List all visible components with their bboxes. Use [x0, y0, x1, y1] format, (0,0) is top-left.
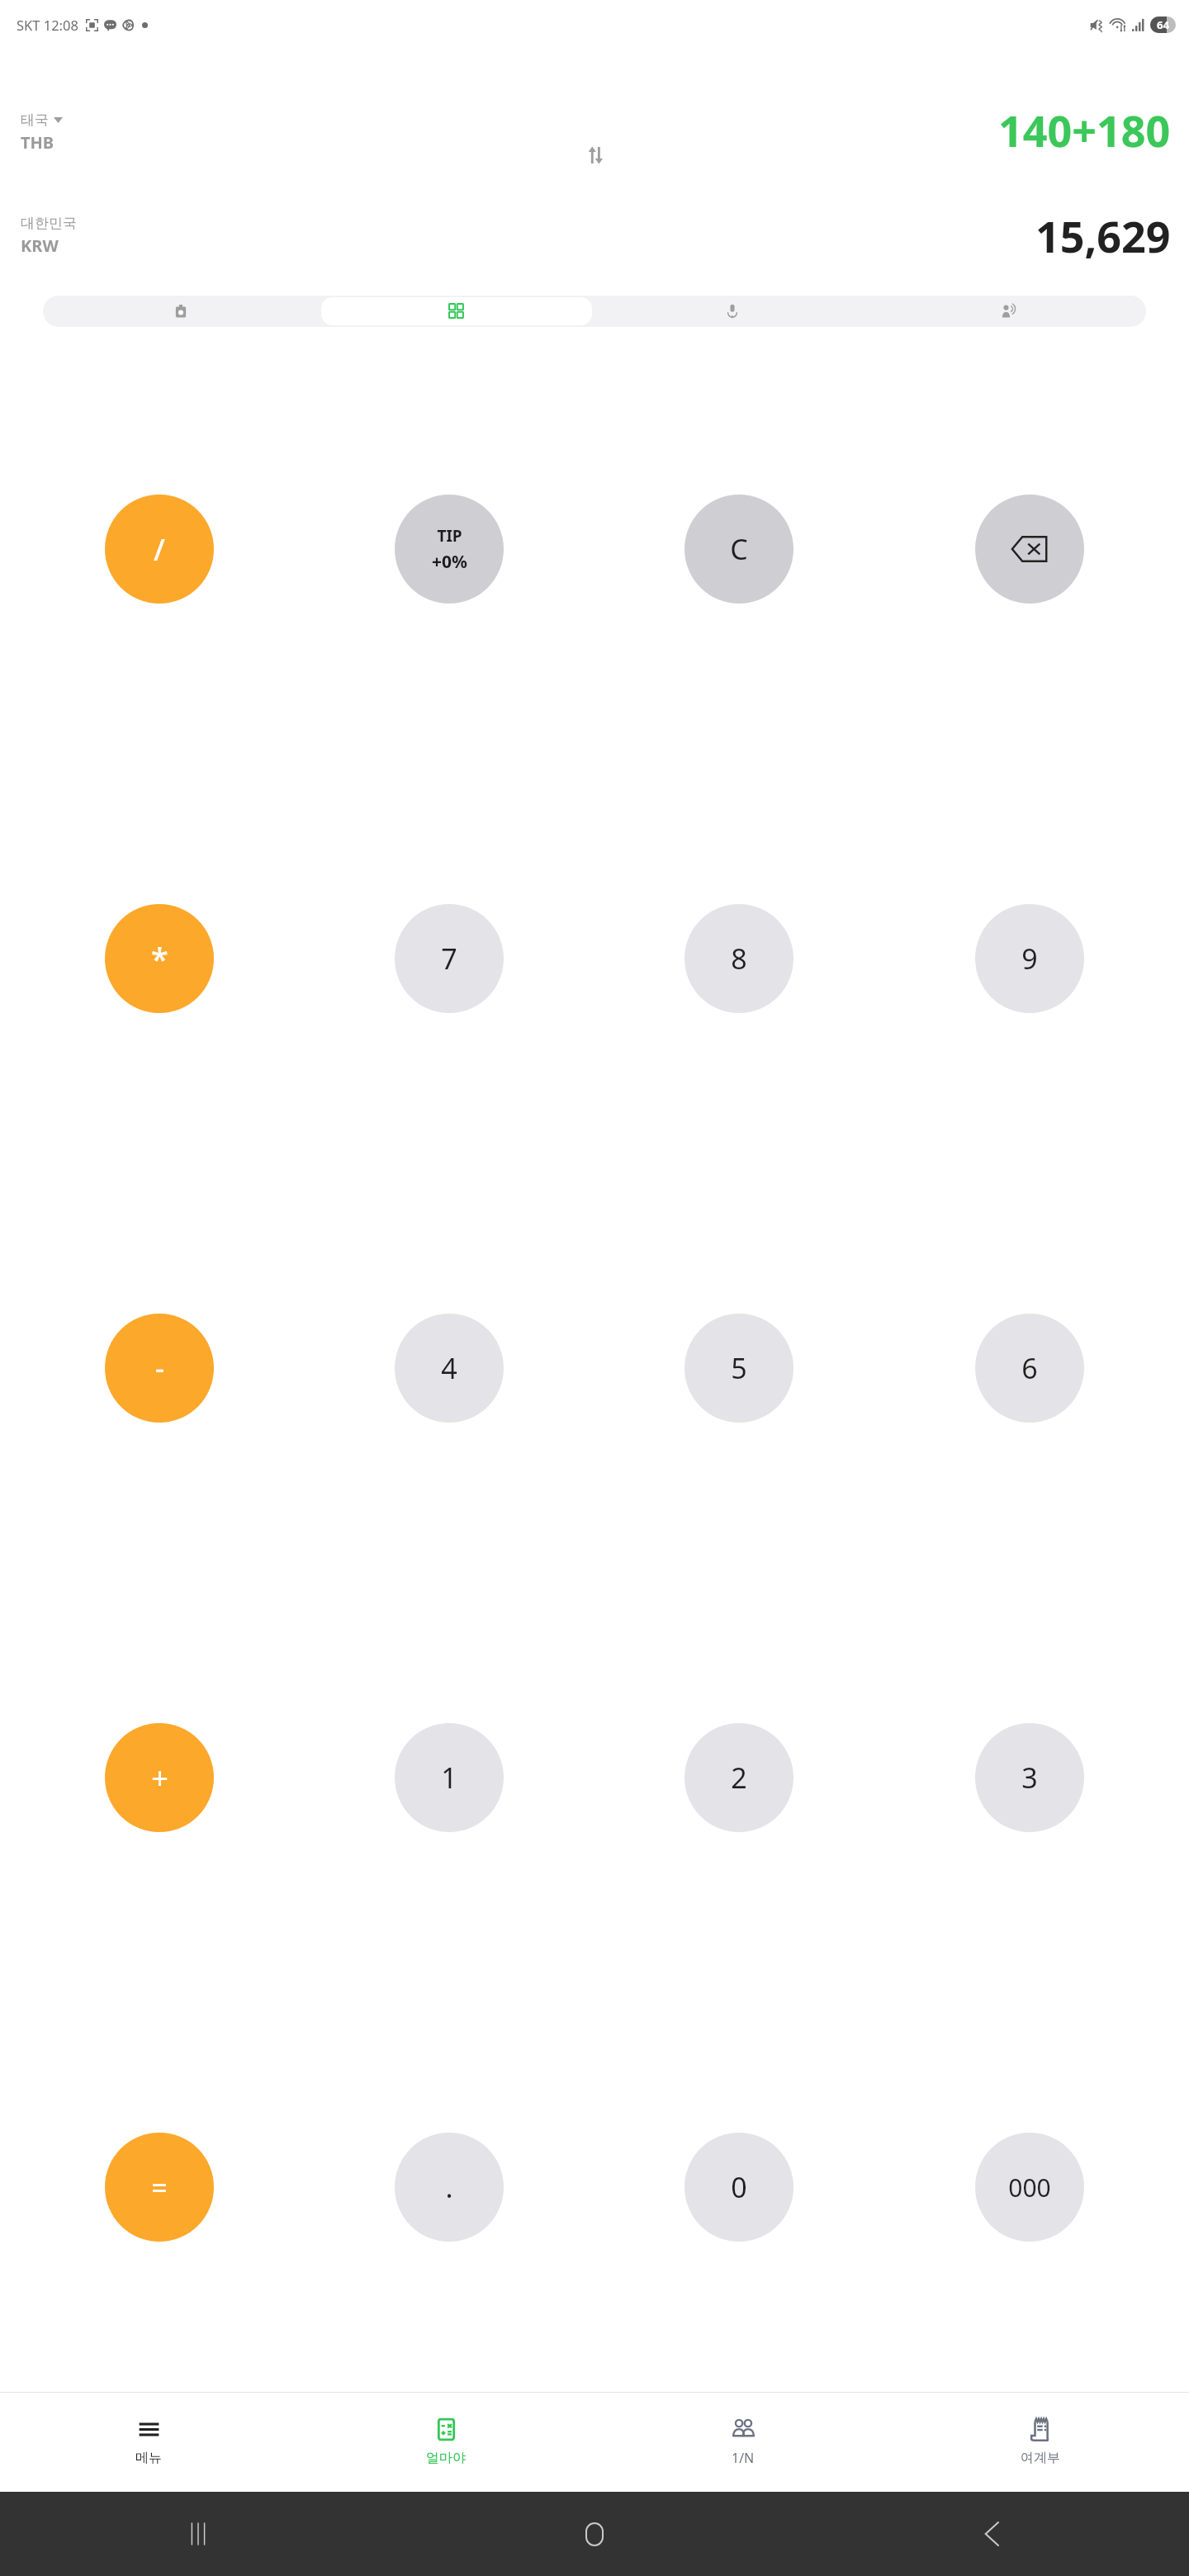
button[interactable]: . [395, 2133, 504, 2242]
staticText: 3 [1021, 1759, 1038, 1797]
button[interactable]: 4 [395, 1314, 504, 1423]
staticText: 5 [731, 1349, 747, 1387]
staticText: KRW [21, 234, 59, 257]
button[interactable]: 태국 [21, 111, 63, 154]
button[interactable]: 5 [685, 1314, 793, 1423]
button[interactable]: 메뉴 [0, 2393, 297, 2492]
button[interactable]: 얼마야 [297, 2393, 594, 2492]
staticText: 0 [731, 2168, 747, 2206]
staticText: C [730, 530, 748, 568]
button[interactable]: 1 [395, 1723, 504, 1832]
staticText: 64 [1157, 17, 1169, 32]
staticText: TIP [437, 525, 462, 547]
button[interactable]: + [105, 1723, 214, 1832]
button[interactable]: 0 [685, 2133, 793, 2242]
staticText: 6 [1021, 1349, 1038, 1387]
staticText: 4 [441, 1349, 457, 1387]
staticText: 대한민국 [21, 215, 77, 232]
staticText: 1/N [732, 2449, 755, 2467]
button[interactable]: / [105, 495, 214, 604]
button[interactable]: 2 [685, 1723, 793, 1832]
button[interactable]: 여계부 [892, 2393, 1189, 2492]
staticText: = [151, 2168, 168, 2206]
staticText: * [151, 937, 168, 980]
button[interactable]: * [105, 904, 214, 1013]
staticText: - [155, 1349, 164, 1387]
button[interactable]: 8 [685, 904, 793, 1013]
button[interactable]: 대한민국 [21, 215, 77, 257]
staticText: 1 [441, 1759, 457, 1797]
button[interactable]: TIP [395, 495, 504, 604]
button[interactable]: Recent apps [0, 2492, 396, 2576]
button[interactable]: 7 [395, 904, 504, 1013]
staticText: +0% [432, 550, 467, 574]
button[interactable]: Voice input [597, 297, 868, 325]
button[interactable]: Swap currencies [576, 136, 613, 173]
staticText: 여계부 [1021, 2450, 1060, 2466]
button[interactable]: 6 [975, 1314, 1084, 1423]
staticText: THB [21, 131, 54, 154]
button[interactable]: - [105, 1314, 214, 1423]
staticText: 메뉴 [135, 2450, 162, 2466]
staticText: 7 [441, 940, 457, 978]
staticText: 2 [731, 1759, 747, 1797]
button[interactable]: Back [793, 2492, 1189, 2576]
staticText: 태국 [21, 111, 49, 129]
staticText: + [151, 1758, 168, 1798]
staticText: 15,629 [1035, 206, 1171, 265]
button[interactable]: 9 [975, 904, 1084, 1013]
button[interactable]: 1/N [594, 2393, 892, 2492]
staticText: SKT 12:08 [17, 16, 78, 34]
button[interactable]: C [685, 495, 793, 604]
staticText: . [445, 2168, 453, 2206]
staticText: 9 [1021, 940, 1038, 978]
staticText: 얼마야 [426, 2450, 466, 2466]
button[interactable]: Camera input [45, 297, 316, 325]
staticText: 8 [731, 940, 747, 978]
staticText: 000 [1008, 2171, 1051, 2204]
button[interactable]: 3 [975, 1723, 1084, 1832]
button[interactable]: 000 [975, 2133, 1084, 2242]
staticText: 140+180 [998, 101, 1171, 159]
button[interactable]: Backspace [975, 495, 1084, 604]
button[interactable]: Conversation [873, 297, 1144, 325]
button[interactable]: = [105, 2133, 214, 2242]
button[interactable]: Keypad input [321, 297, 592, 325]
button[interactable]: Home [396, 2492, 793, 2576]
staticText: / [154, 529, 165, 570]
